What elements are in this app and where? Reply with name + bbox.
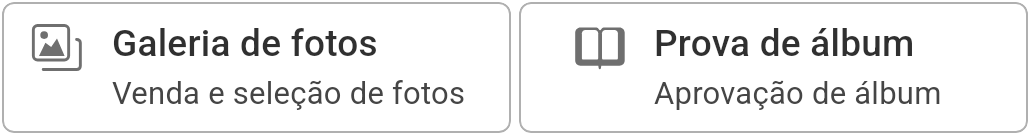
staticText: Galeria de fotos — [112, 22, 378, 65]
other: Prova de álbum — [572, 22, 628, 76]
other: Galeria de fotos — [28, 22, 84, 76]
staticText: Prova de álbum — [654, 22, 915, 65]
staticText: Aprovação de álbum — [654, 75, 942, 111]
button[interactable]: Prova de álbum — [519, 2, 1028, 133]
button[interactable]: Galeria de fotos — [2, 2, 511, 133]
staticText: Venda e seleção de fotos — [112, 75, 466, 111]
